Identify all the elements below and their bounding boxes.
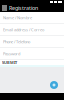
staticText: Registration [9,4,38,12]
staticText: SUBMIT [2,60,17,65]
button[interactable]: Phone / Telefono [0,36,64,48]
button[interactable]: SUBMIT [0,60,64,65]
button[interactable]: Menu [0,4,64,12]
staticText: Password [3,51,20,56]
button[interactable]: Email address / Correo [0,24,64,36]
staticText: Email address / Correo [3,27,44,32]
button[interactable]: Password [0,48,64,60]
button[interactable]: Add [50,81,58,89]
staticText: Phone / Telefono [3,39,30,44]
button[interactable]: Name / Nombre [0,12,64,24]
staticText: Name / Nombre [3,15,32,20]
